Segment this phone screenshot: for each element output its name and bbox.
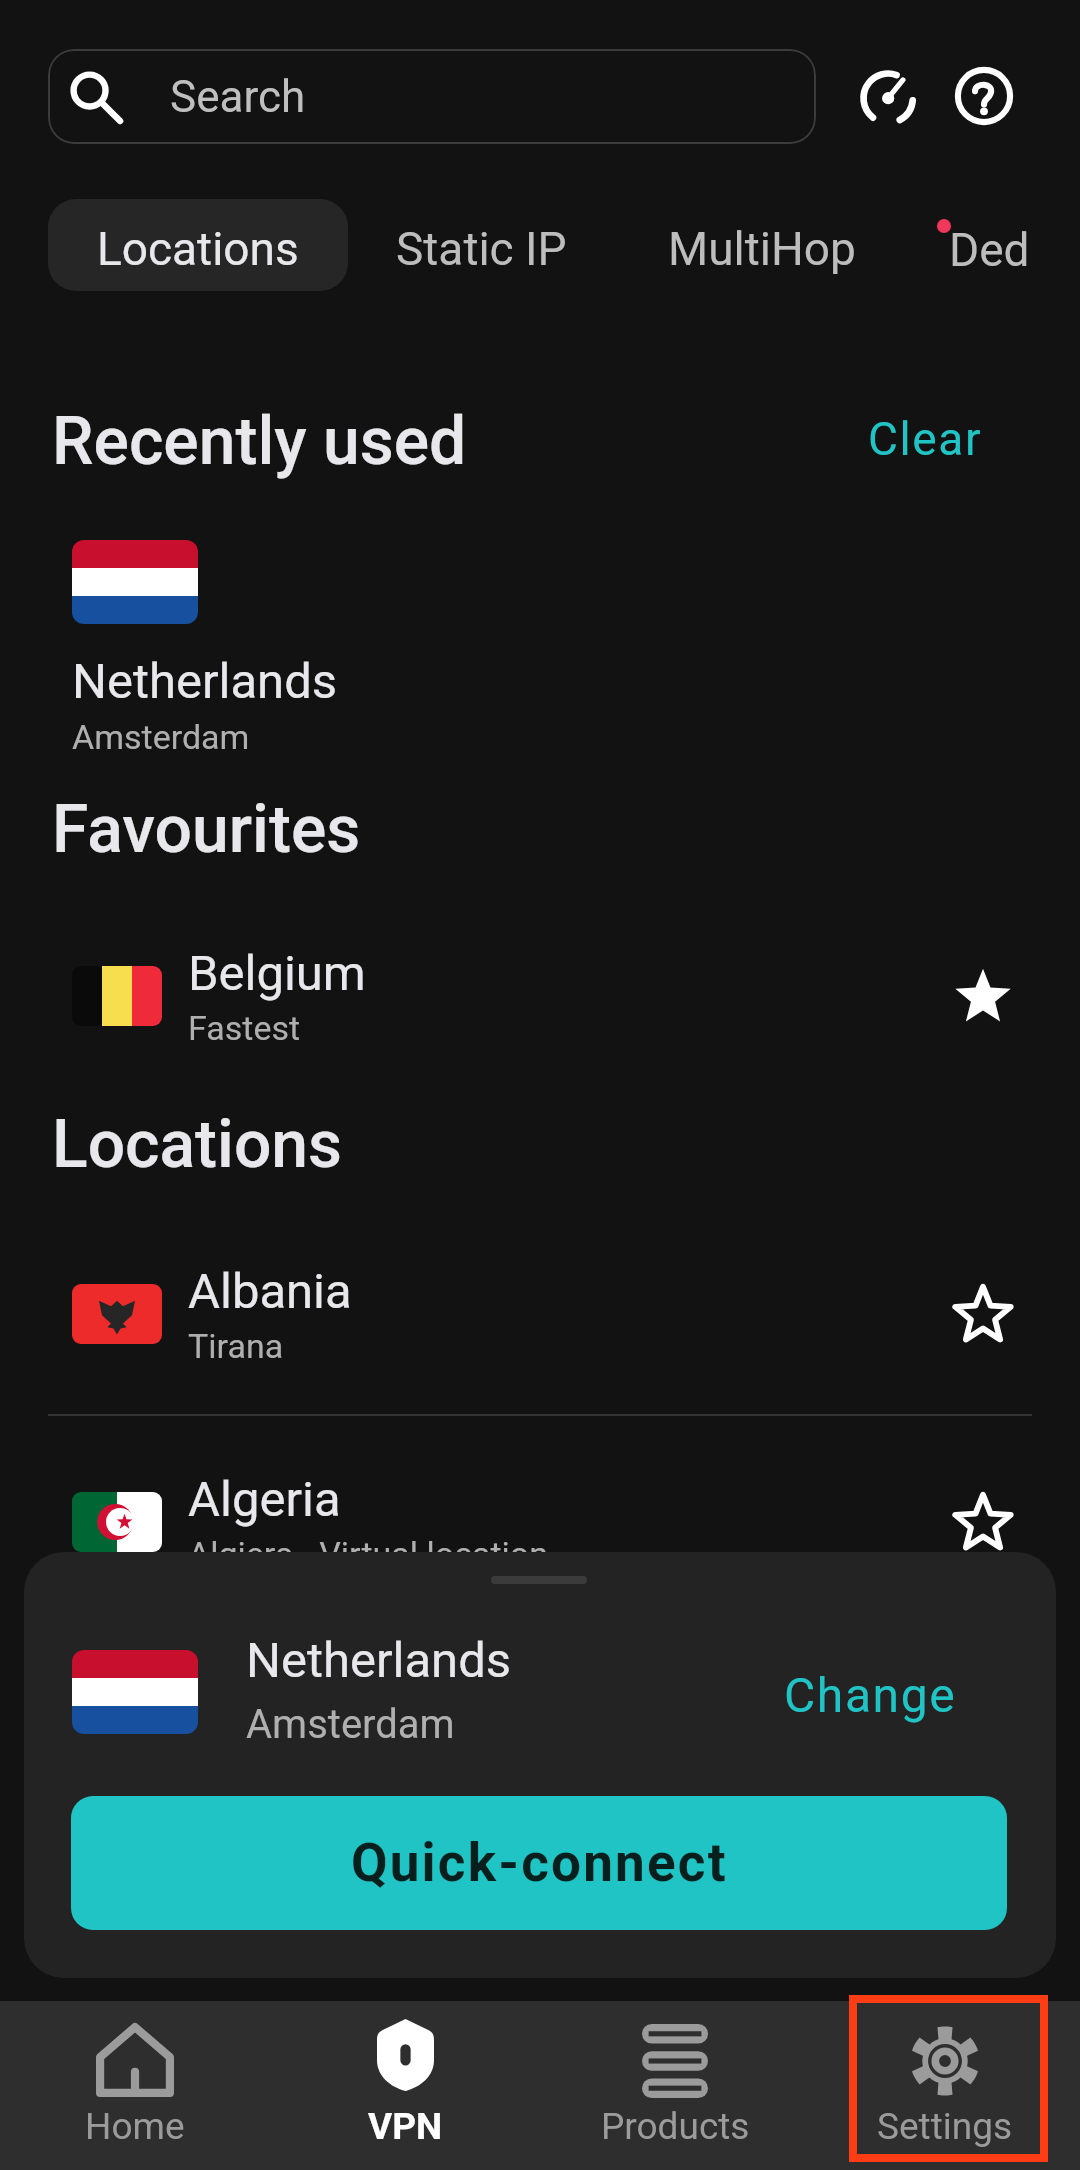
staticText: MultiHop	[668, 222, 856, 276]
staticText: Locations	[52, 1106, 343, 1183]
staticText: Amsterdam	[246, 1701, 455, 1748]
staticText: Favourites	[52, 791, 361, 868]
staticText: VPN	[368, 2105, 443, 2148]
button[interactable]: Clear	[860, 404, 991, 474]
staticText: Recently used	[52, 403, 467, 480]
button[interactable]: Search	[48, 49, 816, 144]
button[interactable]: Algeria	[0, 1466, 1080, 1578]
staticText: Quick-connect	[351, 1832, 728, 1894]
staticText: Algiers - Virtual location	[188, 1534, 549, 1574]
staticText: Locations	[97, 222, 299, 276]
staticText: Algeria	[188, 1471, 341, 1528]
staticText: Products	[601, 2105, 750, 2148]
staticText: Fastest	[188, 1008, 301, 1048]
staticText: Netherlands	[246, 1632, 512, 1689]
staticText: Belgium	[188, 945, 366, 1002]
staticText: Settings	[877, 2105, 1013, 2148]
staticText: Netherlands	[72, 653, 338, 710]
button[interactable]: Speed test	[858, 66, 916, 124]
staticText: Clear	[868, 412, 983, 466]
button[interactable]: Change	[776, 1659, 965, 1731]
button[interactable]: Static IP	[396, 202, 567, 295]
button[interactable]: Settings	[810, 2001, 1080, 2170]
staticText: Amsterdam	[72, 717, 250, 757]
staticText: Change	[784, 1667, 957, 1723]
button[interactable]: Ded	[930, 203, 1080, 296]
staticText: Tirana	[188, 1326, 284, 1366]
button[interactable]: VPN	[270, 2001, 540, 2170]
button[interactable]: MultiHop	[668, 202, 856, 295]
staticText: Ded	[949, 223, 1030, 277]
staticText: Albania	[188, 1263, 352, 1320]
button[interactable]: Netherlands	[72, 540, 338, 757]
button[interactable]: Locations	[48, 199, 348, 291]
button[interactable]: Help	[955, 67, 1013, 125]
staticText: Andorra	[188, 1679, 362, 1736]
button[interactable]: Albania	[0, 1258, 1080, 1370]
button[interactable]: Belgium	[0, 940, 1080, 1052]
button[interactable]: Quick-connect	[71, 1796, 1007, 1930]
button[interactable]: Products	[540, 2001, 810, 2170]
button[interactable]: Home	[0, 2001, 270, 2170]
staticText: Search	[170, 71, 306, 123]
button[interactable]: Andorra	[0, 1674, 1080, 1786]
staticText: Home	[85, 2105, 185, 2148]
staticText: Static IP	[396, 222, 567, 276]
